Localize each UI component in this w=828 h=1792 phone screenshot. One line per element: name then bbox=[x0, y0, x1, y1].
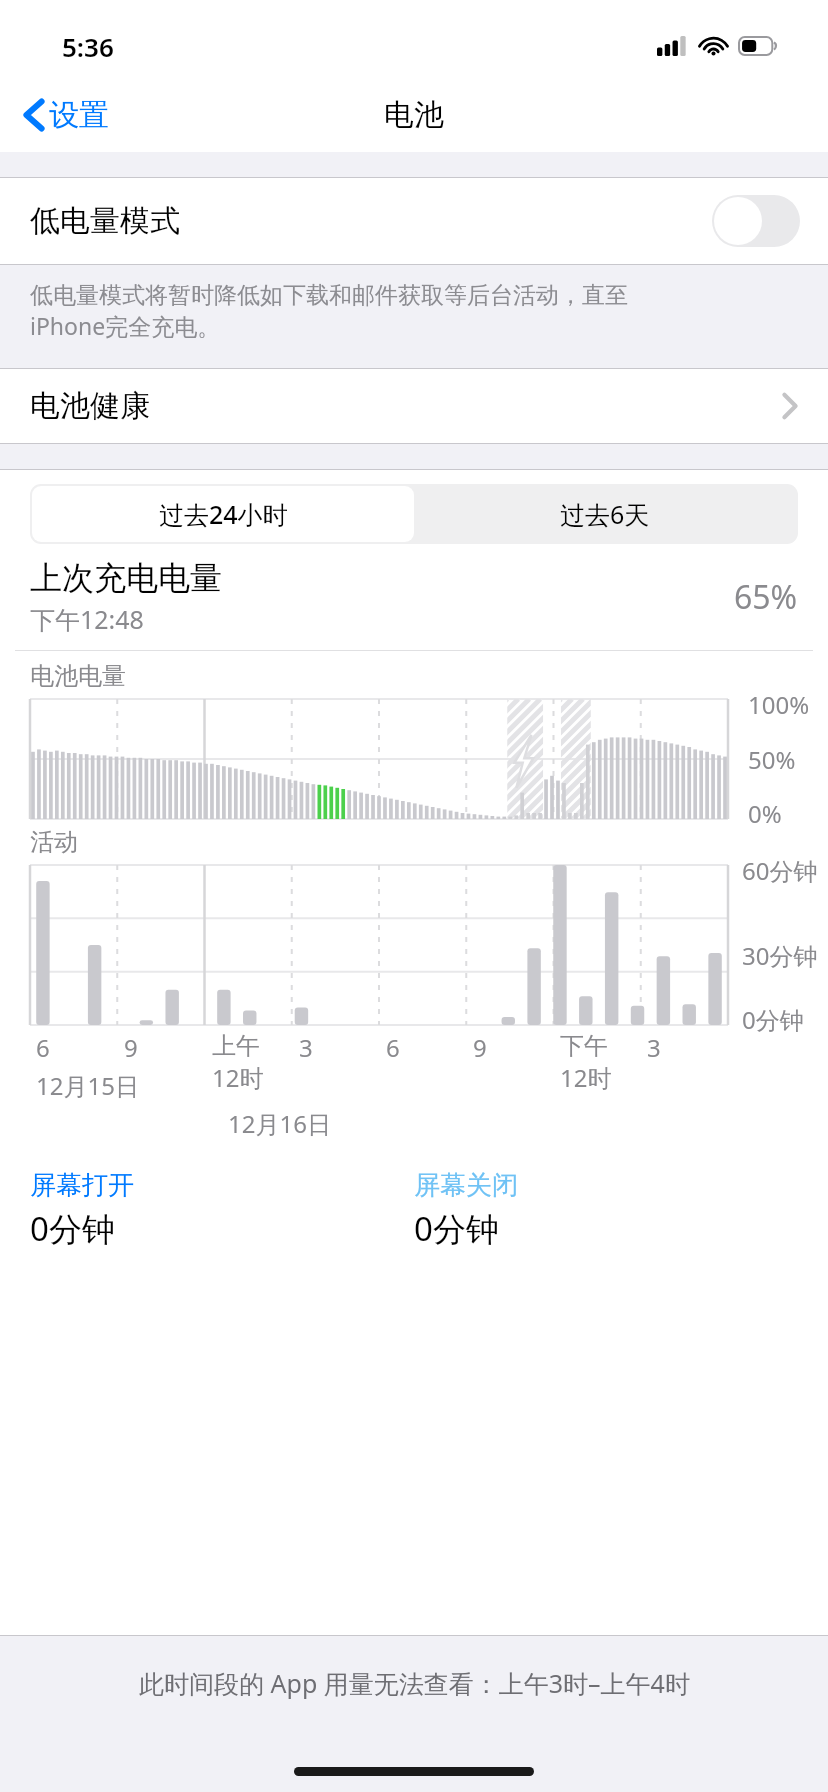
staticText: 0% bbox=[748, 797, 782, 830]
button[interactable]: 屏幕打开 bbox=[30, 1169, 414, 1251]
staticText: 65% bbox=[734, 575, 798, 619]
staticText: 6 bbox=[36, 1031, 50, 1064]
staticText: 50% bbox=[748, 743, 796, 776]
button[interactable]: 过去24小时 bbox=[32, 486, 414, 542]
staticText: 低电量模式将暂时降低如下载和邮件获取等后台活动，直至 iPhone完全充电。 bbox=[30, 281, 628, 342]
staticText: 上午 12时 bbox=[212, 1031, 264, 1094]
button[interactable]: 过去6天 bbox=[414, 486, 796, 542]
staticText: 低电量模式 bbox=[30, 202, 180, 240]
staticText: 下午 12时 bbox=[560, 1031, 612, 1094]
button[interactable]: 屏幕关闭 bbox=[414, 1169, 798, 1251]
staticText: 30分钟 bbox=[742, 939, 818, 972]
staticText: 9 bbox=[473, 1031, 487, 1064]
staticText: 3 bbox=[299, 1031, 313, 1064]
staticText: 100% bbox=[748, 688, 810, 721]
button[interactable]: 低电量模式开关 bbox=[712, 195, 800, 247]
staticText: 6 bbox=[386, 1031, 400, 1064]
staticText: 上次充电电量 bbox=[30, 558, 222, 598]
staticText: 12月16日 bbox=[228, 1107, 331, 1140]
staticText: 过去24小时 bbox=[159, 497, 288, 531]
staticText: 过去6天 bbox=[560, 497, 650, 531]
button[interactable]: 设置 bbox=[18, 90, 115, 140]
staticText: 屏幕关闭 bbox=[414, 1169, 518, 1202]
staticText: 60分钟 bbox=[742, 854, 818, 887]
staticText: 此时间段的 App 用量无法查看：上午3时–上午4时 bbox=[139, 1666, 690, 1700]
staticText: 5:36 bbox=[62, 29, 114, 64]
button[interactable]: 电池健康 bbox=[0, 369, 828, 443]
staticText: 0分钟 bbox=[30, 1206, 115, 1251]
staticText: 9 bbox=[124, 1031, 138, 1064]
staticText: 活动 bbox=[30, 827, 78, 857]
staticText: 设置 bbox=[49, 96, 109, 134]
staticText: 电池健康 bbox=[30, 387, 150, 425]
staticText: 下午12:48 bbox=[30, 602, 144, 636]
staticText: 电池 bbox=[384, 96, 444, 134]
staticText: 0分钟 bbox=[742, 1003, 804, 1036]
staticText: 12月15日 bbox=[36, 1069, 139, 1102]
staticText: 屏幕打开 bbox=[30, 1169, 134, 1202]
button[interactable]: 低电量模式 bbox=[0, 178, 828, 264]
staticText: 0分钟 bbox=[414, 1206, 499, 1251]
staticText: 3 bbox=[647, 1031, 661, 1064]
staticText: 电池电量 bbox=[30, 661, 126, 691]
